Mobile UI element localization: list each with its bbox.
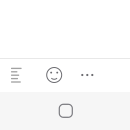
button[interactable]: Emoji: [40, 61, 68, 89]
button[interactable]: Scribble: [2, 61, 30, 89]
button[interactable]: More: [73, 61, 101, 89]
button[interactable]: Stop: [52, 97, 80, 125]
